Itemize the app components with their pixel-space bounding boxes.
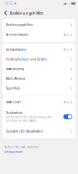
- staticText: Aus: [63, 33, 68, 36]
- staticText: EINSTELLUNGEN?: [4, 150, 23, 153]
- staticText: Smart-Cover: [6, 100, 21, 104]
- staticText: Smart-Sensing: [6, 67, 24, 71]
- button[interactable]: Bedienungshilfen: [2, 20, 75, 30]
- staticText: SuperHub: [6, 87, 20, 90]
- staticText: Bedienungshilfen: [6, 23, 33, 27]
- staticText: Multi-Window: [6, 77, 25, 80]
- button[interactable]: Verknüpfungen und Gesten: [2, 54, 75, 64]
- staticText: Suchen Sie nach anderen: [4, 145, 39, 149]
- button[interactable]: Multi-Window: [2, 74, 75, 84]
- staticText: 13:52: [4, 2, 13, 5]
- button[interactable]: Geplantes Ein-/Ausschalten: [2, 126, 75, 136]
- staticText: Seniorenmodus: [6, 33, 28, 36]
- button[interactable]: EINSTELLUNGEN?: [4, 150, 23, 153]
- button[interactable]: Touchschutz: [2, 107, 75, 126]
- button[interactable]: Smart-Sensing: [2, 64, 75, 74]
- staticText: Aus: [63, 48, 68, 51]
- button[interactable]: Einhandmodus: [2, 45, 75, 54]
- button[interactable]: Seniorenmodus: [2, 30, 75, 40]
- staticText: Touchschutz: [6, 111, 22, 115]
- button[interactable]: Zurück: [4, 10, 7, 16]
- staticText: Bedienungshilfen: [10, 10, 44, 16]
- staticText: Verknüpfungen und Gesten: [6, 58, 47, 61]
- staticText: Aus: [63, 100, 68, 104]
- button[interactable]: Smart-Cover: [2, 97, 75, 107]
- staticText: Verhindert die Bedienung des Telefons in…: [6, 115, 52, 122]
- staticText: LTE: [67, 3, 70, 4]
- staticText: Geplantes Ein-/Ausschalten: [6, 130, 43, 133]
- staticText: Einhandmodus: [6, 48, 26, 51]
- button[interactable]: SuperHub: [2, 84, 75, 93]
